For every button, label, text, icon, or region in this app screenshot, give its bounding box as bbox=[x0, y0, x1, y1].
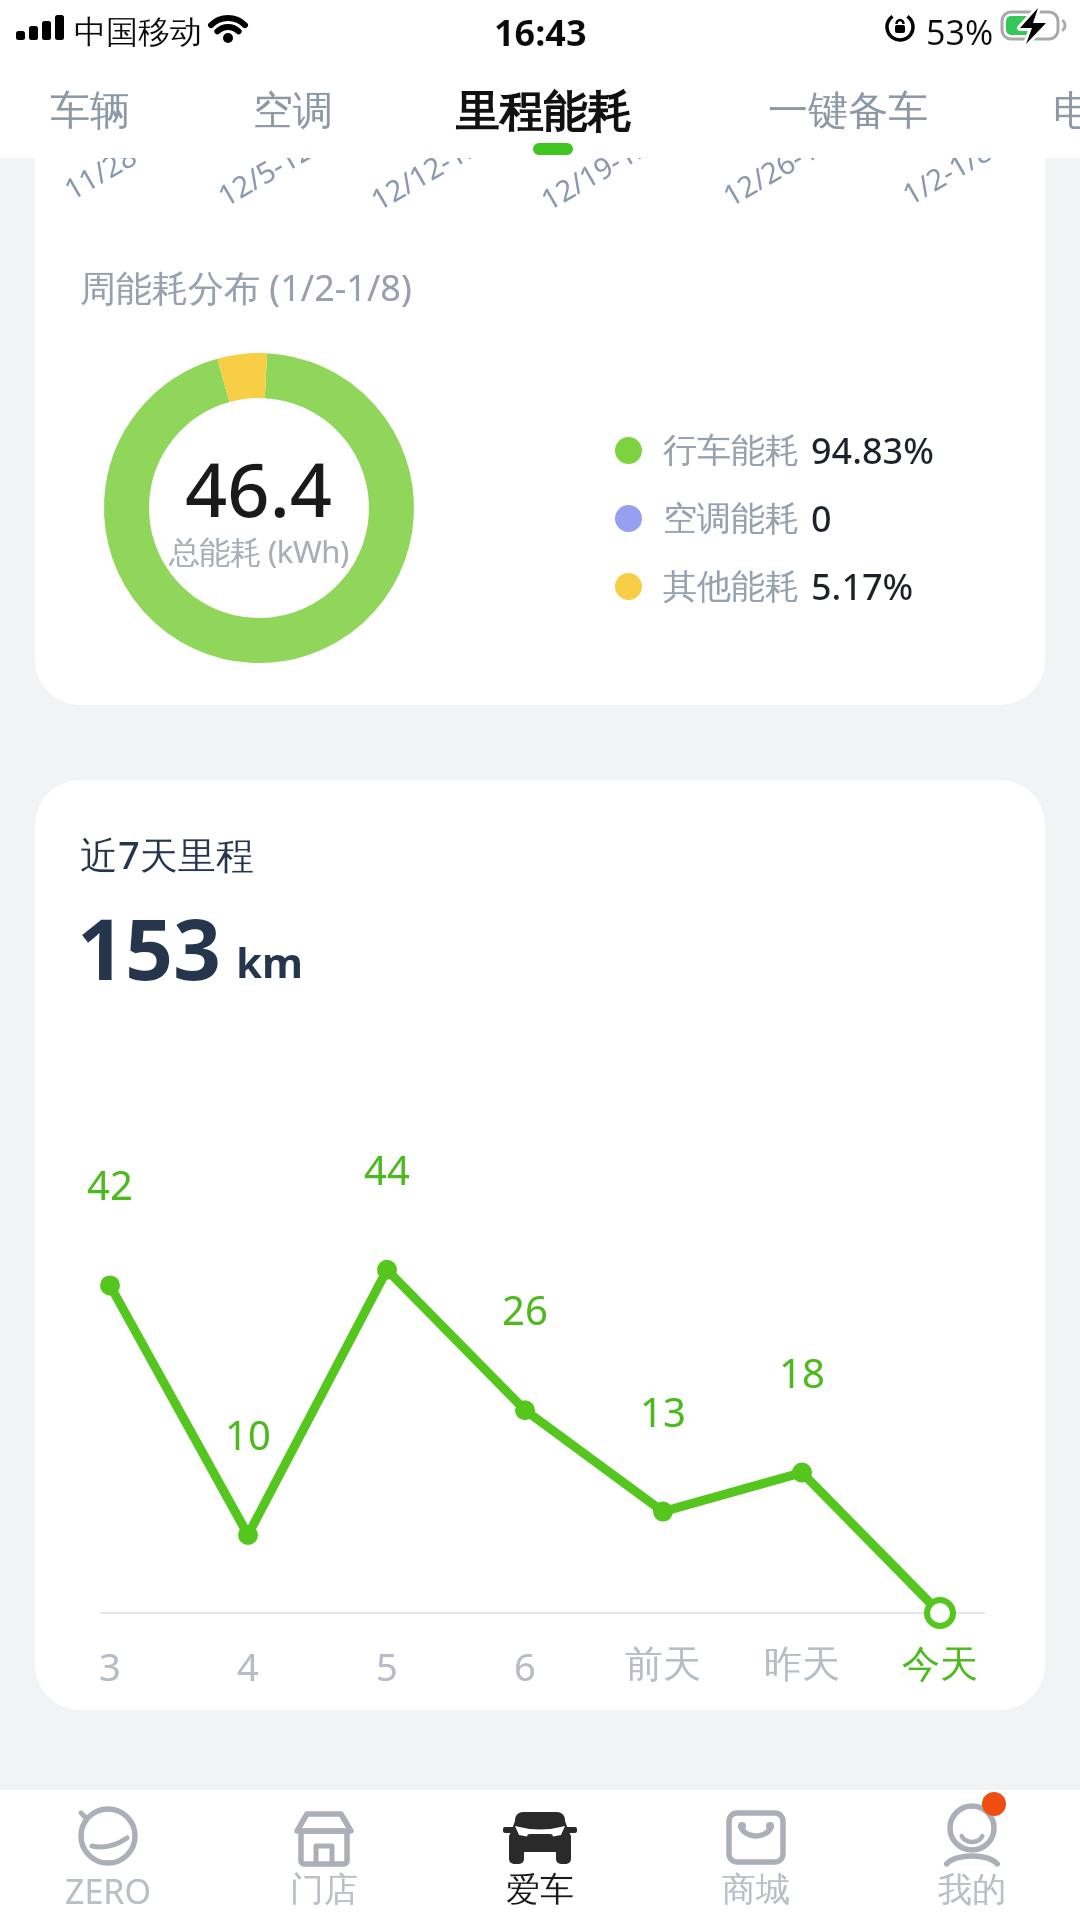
staticText: 我的 bbox=[938, 1868, 1006, 1911]
staticText: km bbox=[236, 933, 303, 990]
button[interactable]: 车辆 bbox=[50, 85, 130, 135]
staticText: 16:43 bbox=[494, 8, 587, 57]
staticText: 车辆 bbox=[50, 85, 130, 135]
staticText: 周能耗分布 (1/2-1/8) bbox=[80, 263, 412, 312]
button[interactable]: ZERO bbox=[0, 1790, 216, 1920]
staticText: 12/5-12 bbox=[210, 158, 320, 214]
staticText: 18 bbox=[779, 1345, 825, 1399]
button[interactable]: 空调 bbox=[253, 85, 333, 135]
staticText: 里程能耗 bbox=[455, 85, 631, 140]
staticText: 10 bbox=[225, 1407, 271, 1461]
staticText: 46.4 bbox=[185, 438, 333, 539]
staticText: 前天 bbox=[625, 1640, 701, 1688]
staticText: 近7天里程 bbox=[80, 828, 254, 880]
staticText: 1/2-1/8 bbox=[895, 158, 999, 213]
staticText: 53% bbox=[926, 9, 994, 55]
staticText: 13 bbox=[640, 1384, 686, 1438]
staticText: 44 bbox=[364, 1142, 410, 1196]
staticText: 今天 bbox=[902, 1640, 978, 1688]
button[interactable]: 爱车 bbox=[432, 1790, 648, 1920]
button[interactable]: 行车能耗 bbox=[615, 426, 934, 475]
button[interactable]: 里程能耗 bbox=[455, 85, 631, 140]
staticText: 电池 bbox=[1053, 85, 1080, 135]
staticText: 中国移动 bbox=[74, 12, 202, 52]
button[interactable]: 商城 bbox=[648, 1790, 864, 1920]
staticText: ZERO bbox=[65, 1868, 152, 1914]
staticText: 4 bbox=[237, 1640, 259, 1692]
staticText: 行车能耗 bbox=[663, 429, 799, 472]
staticText: 其他能耗 bbox=[663, 565, 799, 608]
button[interactable]: 空调能耗 bbox=[615, 494, 832, 543]
staticText: 12/12-12 bbox=[363, 158, 487, 218]
button[interactable]: 电池 bbox=[1053, 85, 1080, 135]
staticText: 42 bbox=[87, 1157, 133, 1211]
staticText: 94.83% bbox=[811, 426, 934, 475]
staticText: 一键备车 bbox=[768, 85, 928, 135]
button[interactable]: 其他能耗 bbox=[615, 562, 914, 611]
button[interactable]: 门店 bbox=[216, 1790, 432, 1920]
staticText: 11/28 bbox=[56, 158, 143, 208]
staticText: 5 bbox=[376, 1640, 398, 1692]
staticText: 0 bbox=[811, 494, 832, 543]
staticText: 空调能耗 bbox=[663, 497, 799, 540]
staticText: 空调 bbox=[253, 85, 333, 135]
staticText: 商城 bbox=[722, 1868, 790, 1911]
button[interactable]: 一键备车 bbox=[768, 85, 928, 135]
staticText: 12/19-12 bbox=[533, 158, 657, 218]
staticText: 爱车 bbox=[506, 1868, 574, 1911]
staticText: 总能耗 (kWh) bbox=[169, 530, 349, 572]
staticText: 6 bbox=[514, 1640, 536, 1692]
staticText: 昨天 bbox=[764, 1640, 840, 1688]
staticText: 26 bbox=[502, 1282, 548, 1336]
staticText: 3 bbox=[99, 1640, 121, 1692]
staticText: 153 bbox=[77, 890, 222, 1004]
staticText: 12/26-1 bbox=[715, 158, 825, 214]
staticText: 门店 bbox=[290, 1868, 358, 1911]
staticText: 5.17% bbox=[811, 562, 914, 611]
button[interactable]: 我的 bbox=[864, 1790, 1080, 1920]
